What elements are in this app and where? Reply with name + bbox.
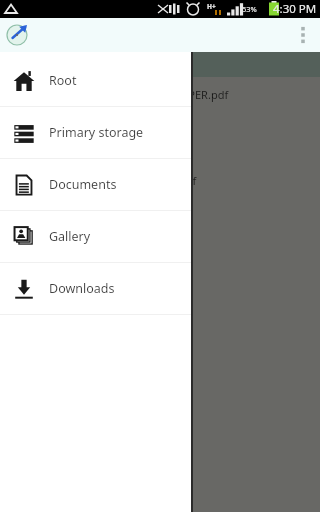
staticText: attestation_beneficiaire_6370909.pdf (6, 173, 320, 188)
staticText: Primary storage (49, 124, 144, 141)
button[interactable]: Primary storage (0, 107, 191, 158)
staticText: doc_a99ef10102.pdf (6, 319, 320, 334)
button[interactable]: Open navigation drawer (0, 18, 34, 52)
button[interactable]: More options (286, 18, 320, 52)
staticText: Root (49, 72, 77, 89)
button[interactable]: Root (0, 55, 191, 106)
staticText: facture_2014 (6, 261, 320, 276)
staticText: doc_a99ef10102.htm (6, 290, 320, 305)
staticText: releve_situation_2014.pdf (6, 130, 320, 145)
staticText: Cahier-de-texte-2013-imprimery-PAPER.pdf (6, 87, 320, 102)
staticText: Documents (49, 176, 117, 193)
staticText: Downloads (49, 280, 115, 297)
button[interactable]: Documents (0, 159, 191, 210)
staticText: bulletin_2014.pdf (6, 218, 320, 233)
button[interactable]: Gallery (0, 211, 191, 262)
button[interactable]: Downloads (0, 263, 191, 314)
staticText: 53% (242, 4, 257, 14)
staticText: Gallery (49, 228, 91, 245)
staticText: 4:30 PM (273, 1, 317, 17)
staticText: H+ (207, 2, 216, 11)
